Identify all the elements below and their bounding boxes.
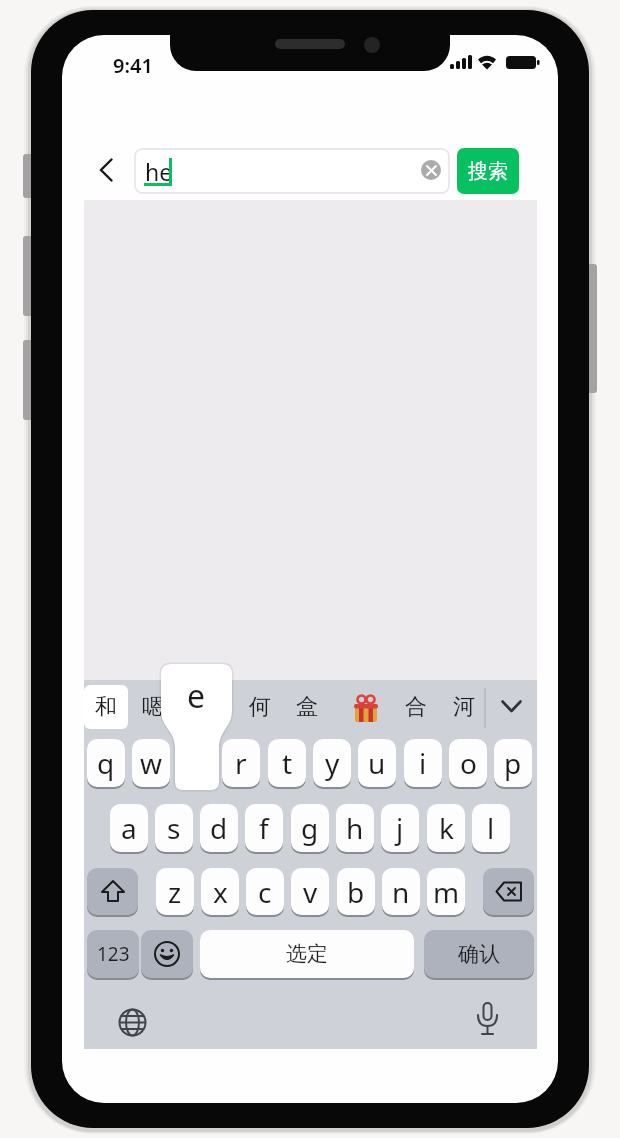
button[interactable]: x (201, 868, 239, 915)
button[interactable]: 选定 (200, 930, 414, 978)
staticText: 搜索 (468, 159, 508, 184)
button[interactable]: 盒 (285, 685, 329, 729)
staticText: u (368, 744, 386, 782)
button[interactable]: 和 (84, 685, 128, 729)
button[interactable]: 河 (442, 685, 486, 729)
staticText: 确认 (458, 941, 500, 967)
button[interactable]: q (87, 739, 125, 787)
button[interactable]: 嗯 (131, 685, 175, 729)
button[interactable]: p (494, 739, 532, 787)
staticText: w (140, 744, 163, 782)
staticText: t (282, 744, 293, 782)
staticText: 9:41 (113, 52, 153, 78)
staticText: s (167, 809, 181, 847)
staticText: b (347, 873, 365, 911)
button[interactable] (483, 868, 534, 915)
staticText: 嗯 (142, 693, 164, 721)
button[interactable]: y (313, 739, 351, 787)
button[interactable]: 合 (394, 685, 438, 729)
staticText: o (460, 744, 477, 782)
button[interactable]: r (222, 739, 260, 787)
staticText: 合 (405, 693, 427, 721)
button[interactable]: b (337, 868, 375, 915)
button[interactable]: n (382, 868, 420, 915)
button[interactable]: i (404, 739, 442, 787)
button[interactable]: g (291, 804, 329, 852)
staticText: h (346, 809, 364, 847)
button[interactable]: d (200, 804, 238, 852)
staticText: x (213, 873, 228, 911)
button[interactable]: o (449, 739, 487, 787)
button[interactable]: he (145, 148, 450, 194)
button[interactable]: c (246, 868, 284, 915)
staticText: m (433, 873, 460, 911)
staticText: y (325, 744, 340, 782)
staticText: e (187, 674, 206, 718)
button[interactable]: 确认 (424, 930, 534, 978)
staticText: z (168, 873, 182, 911)
staticText: l (487, 809, 495, 847)
button[interactable] (501, 700, 522, 714)
staticText: g (301, 809, 319, 847)
button[interactable]: s (155, 804, 193, 852)
button[interactable] (141, 930, 193, 978)
staticText: i (419, 744, 427, 782)
staticText: k (439, 809, 454, 847)
staticText: 盒 (296, 693, 318, 721)
button[interactable]: w (132, 739, 170, 787)
staticText: 何 (249, 693, 271, 721)
staticText: 123 (97, 941, 130, 967)
staticText: 河 (453, 693, 475, 721)
staticText: he (145, 156, 173, 187)
button[interactable] (99, 158, 114, 182)
staticText: f (259, 809, 269, 847)
staticText: 选定 (286, 941, 328, 967)
button[interactable]: f (245, 804, 283, 852)
staticText: p (504, 744, 522, 782)
button[interactable] (352, 695, 380, 723)
button[interactable]: a (110, 804, 148, 852)
button[interactable]: z (156, 868, 194, 915)
staticText: v (303, 873, 318, 911)
button[interactable]: 何 (238, 685, 282, 729)
button[interactable]: e (161, 663, 232, 729)
button[interactable]: m (427, 868, 465, 915)
button[interactable] (421, 160, 441, 180)
staticText: q (97, 744, 115, 782)
staticText: j (396, 809, 404, 847)
button[interactable] (87, 868, 138, 915)
staticText: r (235, 744, 247, 782)
button[interactable]: v (291, 868, 329, 915)
button[interactable]: 搜索 (457, 148, 519, 194)
button[interactable]: k (427, 804, 465, 852)
staticText: c (258, 873, 272, 911)
staticText: 和 (95, 693, 117, 721)
button[interactable]: l (472, 804, 510, 852)
button[interactable]: t (268, 739, 306, 787)
button[interactable] (118, 1008, 147, 1037)
button[interactable]: u (358, 739, 396, 787)
button[interactable] (477, 1003, 498, 1037)
button[interactable]: 123 (87, 930, 139, 978)
staticText: d (210, 809, 228, 847)
button[interactable]: h (336, 804, 374, 852)
staticText: n (392, 873, 410, 911)
button[interactable]: j (381, 804, 419, 852)
staticText: a (121, 809, 137, 847)
